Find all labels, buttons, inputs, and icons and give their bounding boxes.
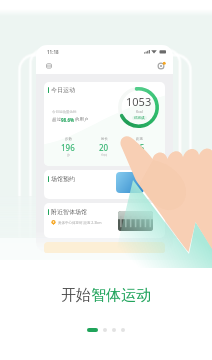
button[interactable] bbox=[44, 242, 165, 253]
staticText: 时长 bbox=[101, 137, 108, 141]
staticText: 20 bbox=[99, 142, 109, 153]
staticText: 步数 bbox=[65, 137, 72, 141]
staticText: 的用户 bbox=[75, 117, 89, 123]
staticText: 1053 bbox=[126, 94, 152, 109]
staticText: 超过 bbox=[52, 117, 61, 123]
staticText: 0.5 bbox=[133, 142, 145, 153]
staticText: 196 bbox=[61, 142, 75, 153]
staticText: 已完成 bbox=[134, 116, 145, 120]
staticText: 今日运动量达标 bbox=[52, 110, 77, 114]
staticText: 11:18 bbox=[47, 49, 59, 55]
staticText: 智体运动 bbox=[91, 286, 151, 305]
staticText: Kcal bbox=[136, 109, 143, 114]
staticText: 距离 bbox=[136, 137, 143, 141]
staticText: 场馆预约 bbox=[51, 175, 75, 183]
staticText: 开始 bbox=[61, 286, 91, 305]
staticText: 奥体中心体育馆 距离 2.3km bbox=[58, 220, 102, 225]
staticText: 98.6% bbox=[61, 117, 75, 123]
button[interactable]: 今日运动 bbox=[44, 82, 165, 166]
button[interactable]: Settings bbox=[155, 60, 166, 71]
staticText: 步 bbox=[67, 153, 70, 157]
staticText: 今日运动 bbox=[51, 86, 75, 94]
button[interactable]: 场馆预约 bbox=[44, 170, 165, 199]
button[interactable]: Venue booking bbox=[116, 172, 144, 193]
staticText: 附近智体场馆 bbox=[51, 208, 87, 216]
button[interactable]: 附近智体场馆 bbox=[44, 203, 165, 238]
staticText: 分钟 bbox=[101, 153, 107, 157]
button[interactable]: Calendar bbox=[43, 60, 54, 71]
